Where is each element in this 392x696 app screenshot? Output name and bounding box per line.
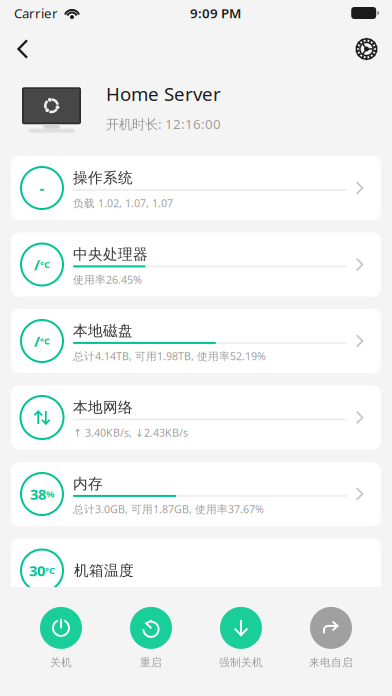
staticText: 关机: [50, 656, 72, 669]
staticText: 来电自启: [309, 656, 353, 669]
staticText: 总计4.14TB, 可用1.98TB, 使用率52.19%: [73, 349, 266, 363]
staticText: Home Server: [106, 81, 221, 106]
button[interactable]: Settings: [348, 28, 385, 69]
staticText: 9:09 PM: [190, 4, 241, 22]
staticText: 总计3.0GB, 可用1.87GB, 使用率37.67%: [73, 502, 264, 516]
staticText: 内存: [73, 475, 103, 493]
staticText: /: [34, 331, 40, 351]
staticText: 机箱温度: [74, 561, 134, 579]
staticText: /: [34, 255, 40, 274]
button[interactable]: 来电自启: [286, 607, 376, 669]
staticText: °C: [40, 258, 50, 271]
staticText: 强制关机: [219, 656, 263, 669]
button[interactable]: 重启: [106, 607, 196, 669]
staticText: °C: [45, 564, 55, 577]
button[interactable]: 38: [11, 462, 381, 526]
staticText: -: [39, 178, 44, 198]
staticText: Carrier: [14, 4, 58, 22]
button[interactable]: Back: [11, 29, 40, 69]
staticText: 中央处理器: [73, 245, 148, 263]
button[interactable]: 30: [11, 538, 381, 602]
staticText: 本地网络: [73, 398, 133, 416]
staticText: 使用率26.45%: [73, 272, 142, 287]
staticText: ↑ 3.40KB/s, ↓2.43KB/s: [73, 425, 188, 440]
button[interactable]: 强制关机: [196, 607, 286, 669]
button[interactable]: /: [11, 309, 381, 373]
staticText: 开机时长: 12:16:00: [106, 115, 221, 133]
staticText: 本地磁盘: [73, 322, 133, 340]
button[interactable]: 关机: [16, 607, 106, 669]
button[interactable]: 本地网络: [11, 385, 381, 449]
staticText: %: [46, 488, 54, 500]
staticText: 38: [30, 484, 46, 504]
staticText: 30: [29, 561, 45, 580]
staticText: °C: [40, 335, 50, 347]
staticText: 负载 1.02, 1.07, 1.07: [73, 196, 173, 210]
button[interactable]: /: [11, 232, 381, 296]
button[interactable]: -: [11, 156, 381, 220]
staticText: 操作系统: [73, 169, 133, 187]
staticText: 重启: [140, 656, 162, 669]
